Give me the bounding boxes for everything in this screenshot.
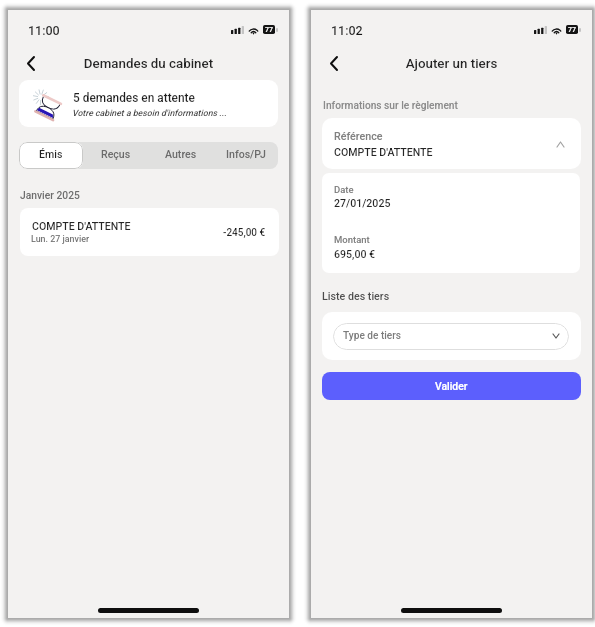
staticText: Liste des tiers	[322, 290, 390, 303]
staticText: Demandes du cabinet	[8, 56, 289, 72]
button[interactable]: Reçus	[83, 142, 148, 169]
button[interactable]: Référence	[322, 118, 581, 169]
staticText: Valider	[435, 380, 468, 392]
button[interactable]: 5 demandes en attente	[19, 80, 278, 127]
button[interactable]: COMPTE D'ATTENTE	[20, 208, 279, 256]
staticText: 11:00	[28, 23, 60, 38]
staticText: Informations sur le règlement	[323, 100, 458, 112]
button[interactable]: Type de tiers	[333, 323, 569, 350]
staticText: -245,00 €	[223, 227, 266, 239]
staticText: 27/01/2025	[334, 197, 391, 209]
button[interactable]: Autres	[148, 142, 213, 169]
staticText: Ajouter un tiers	[311, 56, 592, 72]
staticText: Montant	[334, 234, 370, 245]
staticText: Lun. 27 janvier	[31, 234, 90, 244]
button[interactable]: Back	[16, 48, 46, 78]
staticText: 11:02	[331, 23, 363, 38]
staticText: Reçus	[101, 148, 131, 160]
staticText: Référence	[334, 130, 383, 143]
staticText: COMPTE D'ATTENTE	[334, 146, 433, 158]
button[interactable]: Émis	[19, 142, 83, 169]
button[interactable]: Back	[319, 48, 349, 78]
other: Collapse	[557, 142, 564, 147]
button[interactable]: Infos/PJ	[213, 142, 278, 169]
staticText: 5 demandes en attente	[73, 91, 195, 105]
staticText: Émis	[39, 148, 63, 160]
staticText: COMPTE D'ATTENTE	[32, 220, 131, 232]
staticText: Date	[334, 184, 354, 195]
staticText: 77	[568, 26, 576, 34]
staticText: 77	[265, 26, 273, 34]
staticText: Autres	[165, 148, 197, 160]
staticText: Votre cabinet a besoin d'informations ..…	[72, 108, 227, 118]
staticText: Janvier 2025	[20, 189, 80, 201]
button[interactable]: Valider	[322, 372, 581, 400]
staticText: 695,00 €	[334, 248, 376, 260]
staticText: Type de tiers	[343, 330, 402, 342]
staticText: Infos/PJ	[226, 148, 266, 160]
